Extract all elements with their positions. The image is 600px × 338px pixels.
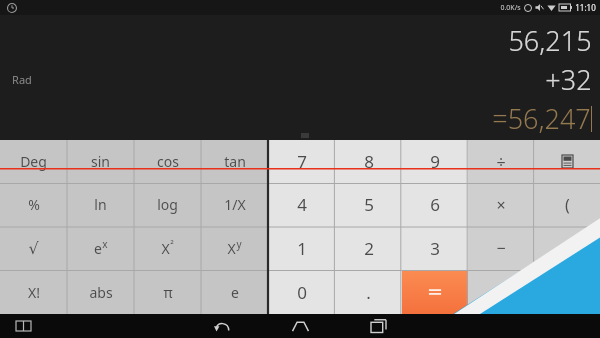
- button[interactable]: .: [335, 270, 402, 314]
- staticText: e: [231, 283, 239, 302]
- staticText: 0: [297, 281, 307, 304]
- staticText: %: [28, 195, 40, 214]
- button[interactable]: [534, 270, 600, 314]
- button[interactable]: Home: [287, 314, 313, 338]
- button[interactable]: Delete: [534, 140, 600, 183]
- staticText: 8: [364, 150, 374, 173]
- button[interactable]: [402, 270, 468, 314]
- button[interactable]: 1: [268, 226, 335, 270]
- staticText: 0.0K/s: [500, 3, 521, 13]
- staticText: +: [496, 281, 506, 303]
- button[interactable]: e: [67, 226, 134, 270]
- staticText: abs: [89, 283, 113, 302]
- staticText: 3: [430, 237, 440, 260]
- staticText: ): [565, 237, 570, 259]
- button[interactable]: 4: [268, 183, 335, 226]
- button[interactable]: ÷: [468, 140, 534, 183]
- button[interactable]: 6: [402, 183, 468, 226]
- button[interactable]: 0: [268, 270, 335, 314]
- button[interactable]: ): [534, 226, 600, 270]
- button[interactable]: cos: [134, 140, 201, 183]
- button[interactable]: abs: [67, 270, 134, 314]
- staticText: e: [94, 239, 102, 258]
- staticText: 1/X: [224, 195, 246, 214]
- staticText: −: [496, 237, 506, 259]
- staticText: 9: [430, 150, 440, 173]
- button[interactable]: tan: [201, 140, 268, 183]
- button[interactable]: Back: [209, 314, 235, 338]
- staticText: Rad: [12, 72, 32, 87]
- button[interactable]: +: [468, 270, 534, 314]
- staticText: (: [565, 194, 570, 216]
- button[interactable]: Deg: [0, 140, 67, 183]
- staticText: 11:10: [575, 2, 596, 13]
- button[interactable]: π: [134, 270, 201, 314]
- staticText: 2: [364, 237, 374, 260]
- button[interactable]: X: [134, 226, 201, 270]
- staticText: tan: [224, 152, 246, 171]
- staticText: 6: [430, 193, 440, 216]
- staticText: Deg: [20, 152, 47, 171]
- staticText: ×: [496, 194, 506, 216]
- staticText: 56,215: [508, 22, 592, 59]
- staticText: log: [157, 195, 178, 214]
- button[interactable]: 2: [335, 226, 402, 270]
- staticText: sin: [91, 152, 110, 171]
- button[interactable]: −: [468, 226, 534, 270]
- staticText: 5: [364, 193, 374, 216]
- button[interactable]: ×: [468, 183, 534, 226]
- staticText: X!: [28, 283, 40, 302]
- staticText: ÷: [496, 151, 506, 173]
- staticText: x: [102, 237, 108, 251]
- button[interactable]: Split screen: [12, 315, 34, 337]
- staticText: ²: [170, 237, 174, 251]
- button[interactable]: ln: [67, 183, 134, 226]
- staticText: +32: [545, 61, 592, 98]
- button[interactable]: √: [0, 226, 67, 270]
- button[interactable]: %: [0, 183, 67, 226]
- button[interactable]: sin: [67, 140, 134, 183]
- staticText: cos: [157, 152, 179, 171]
- button[interactable]: Rad: [12, 72, 32, 87]
- staticText: y: [236, 237, 242, 251]
- button[interactable]: 8: [335, 140, 402, 183]
- staticText: .: [366, 281, 371, 304]
- button[interactable]: 1/X: [201, 183, 268, 226]
- staticText: 4: [297, 193, 307, 216]
- staticText: √: [28, 239, 39, 258]
- button[interactable]: e: [201, 270, 268, 314]
- staticText: 7: [297, 150, 307, 173]
- staticText: X: [227, 239, 236, 258]
- button[interactable]: X: [201, 226, 268, 270]
- button[interactable]: log: [134, 183, 201, 226]
- button[interactable]: 7: [268, 140, 335, 183]
- staticText: X: [161, 239, 170, 258]
- button[interactable]: (: [534, 183, 600, 226]
- staticText: =56,247: [492, 100, 591, 137]
- button[interactable]: X!: [0, 270, 67, 314]
- button[interactable]: 3: [402, 226, 468, 270]
- staticText: 1: [297, 237, 307, 260]
- button[interactable]: 5: [335, 183, 402, 226]
- button[interactable]: Recents: [365, 314, 391, 338]
- staticText: π: [163, 283, 173, 302]
- staticText: ln: [94, 195, 107, 214]
- button[interactable]: 9: [402, 140, 468, 183]
